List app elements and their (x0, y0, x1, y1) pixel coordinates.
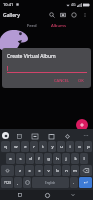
button[interactable]: Add album (76, 119, 88, 131)
staticText: q (4, 144, 7, 150)
staticText: b (56, 168, 59, 174)
button[interactable]: a (6, 153, 15, 164)
button[interactable]: GIF (31, 132, 39, 140)
staticText: z (19, 168, 21, 174)
button[interactable]: s (16, 153, 25, 164)
button[interactable]: Stickers (15, 132, 23, 140)
button[interactable]: g (44, 153, 52, 164)
button[interactable]: Shift (1, 165, 14, 176)
button[interactable]: Space (32, 177, 69, 188)
button[interactable]: i (66, 141, 74, 152)
button[interactable]: Symbols (1, 177, 13, 188)
staticText: . (73, 180, 75, 185)
button[interactable]: Emoji (23, 177, 31, 188)
button[interactable]: Settings (63, 132, 71, 140)
staticText: Albums (51, 23, 67, 29)
staticText: Feed (27, 23, 37, 29)
button[interactable]: Albums (46, 22, 72, 30)
button[interactable]: Feed (22, 22, 42, 30)
button[interactable]: e (21, 141, 29, 152)
staticText: OK (78, 78, 84, 83)
staticText: s (19, 156, 22, 162)
button[interactable]: Select (68, 9, 79, 21)
button[interactable]: Keyboard assistant (2, 132, 9, 139)
button[interactable]: Cast (57, 9, 68, 21)
button[interactable]: Recents (14, 190, 26, 200)
staticText: l (83, 156, 85, 162)
button[interactable]: y (48, 141, 56, 152)
staticText: , (17, 180, 19, 185)
button[interactable]: Backspace (80, 165, 92, 176)
staticText: m (73, 168, 77, 174)
button[interactable]: Home (41, 190, 53, 200)
button[interactable]: m (71, 165, 79, 176)
staticText: p (87, 144, 90, 150)
button[interactable]: r (30, 141, 38, 152)
staticText: y (51, 144, 54, 150)
button[interactable]: t (39, 141, 47, 152)
button[interactable]: Search (46, 9, 57, 21)
button[interactable]: OK (75, 76, 87, 85)
button[interactable]: j (62, 153, 70, 164)
button[interactable]: u (57, 141, 65, 152)
button[interactable]: q (1, 141, 10, 152)
staticText: English (45, 181, 56, 185)
button[interactable]: More options (79, 9, 90, 21)
button[interactable]: Clipboard (47, 132, 55, 140)
staticText: j (65, 156, 67, 162)
staticText: e (24, 144, 27, 150)
staticText: k (74, 156, 77, 162)
button[interactable]: b (53, 165, 61, 176)
button[interactable]: Period (70, 177, 78, 188)
button[interactable]: CANCEL (51, 76, 73, 85)
button[interactable]: l (80, 153, 88, 164)
button[interactable]: Back (67, 190, 79, 200)
staticText: c (38, 168, 41, 174)
staticText: CANCEL (54, 78, 70, 83)
staticText: Create Virtual Album (7, 53, 56, 60)
staticText: v (47, 168, 50, 174)
staticText: f (38, 156, 40, 162)
button[interactable]: d (26, 153, 34, 164)
staticText: w (14, 144, 18, 150)
button[interactable]: More (81, 131, 91, 140)
staticText: g (47, 156, 50, 162)
button[interactable]: Comma (14, 177, 22, 188)
button[interactable]: v (44, 165, 52, 176)
staticText: 10:41 (3, 2, 14, 7)
staticText: d (29, 156, 32, 162)
staticText: x (28, 168, 31, 174)
button[interactable]: x (25, 165, 34, 176)
button[interactable] (7, 65, 87, 73)
staticText: i (69, 144, 71, 150)
button[interactable]: f (35, 153, 43, 164)
staticText: a (9, 156, 12, 162)
button[interactable]: o (75, 141, 83, 152)
staticText: 4G (71, 2, 76, 7)
staticText: n (65, 168, 68, 174)
button[interactable]: Enter (79, 177, 92, 188)
staticText: o (78, 144, 81, 150)
staticText: h (56, 156, 59, 162)
staticText: t (42, 144, 44, 150)
staticText: Gallery (3, 12, 20, 19)
button[interactable]: p (84, 141, 92, 152)
staticText: ?123 (4, 181, 11, 185)
button[interactable]: h (53, 153, 61, 164)
button[interactable]: c (35, 165, 43, 176)
staticText: u (60, 144, 63, 150)
button[interactable]: w (11, 141, 20, 152)
button[interactable]: k (71, 153, 79, 164)
button[interactable]: z (15, 165, 24, 176)
staticText: r (33, 144, 35, 150)
button[interactable]: n (62, 165, 70, 176)
